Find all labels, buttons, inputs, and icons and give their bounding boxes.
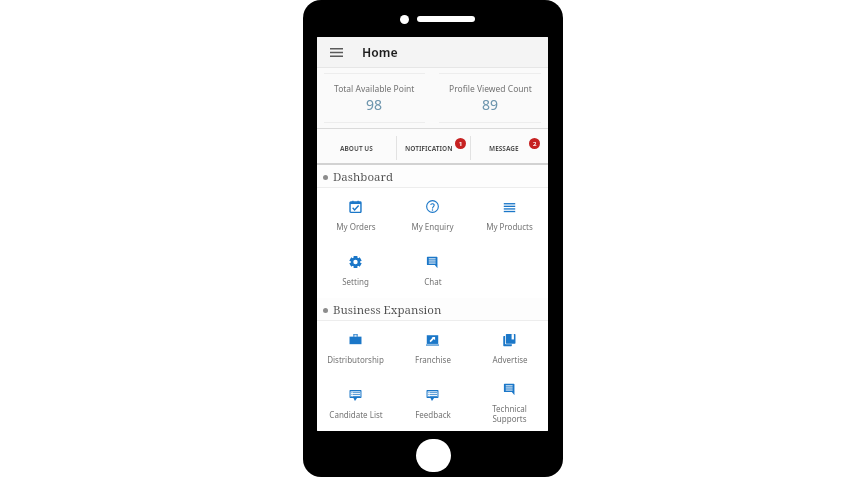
button[interactable]: My Enquiry (394, 188, 471, 243)
staticText: My Products (486, 221, 533, 232)
button[interactable]: My Orders (317, 188, 394, 243)
button[interactable]: Technical Supports (471, 376, 548, 431)
button[interactable]: Advertise (471, 321, 548, 376)
staticText: Profile Viewed Count (449, 83, 532, 95)
staticText: 1 (459, 140, 463, 148)
staticText: ABOUT US (340, 144, 373, 153)
staticText: My Orders (336, 221, 376, 232)
staticText: Chat (424, 276, 442, 287)
button[interactable]: Distributorship (317, 321, 394, 376)
staticText: Candidate List (329, 409, 383, 420)
button[interactable]: Menu (325, 41, 347, 63)
staticText: Distributorship (327, 354, 384, 365)
staticText: Dashboard (333, 169, 393, 185)
staticText: NOTIFICATION (405, 144, 453, 153)
button[interactable]: Chat (394, 243, 471, 298)
staticText: My Enquiry (411, 221, 454, 232)
button[interactable]: Feedback (394, 376, 471, 431)
button[interactable]: MESSAGE (471, 131, 548, 165)
staticText: 2 (533, 140, 537, 148)
button[interactable]: NOTIFICATION (397, 131, 470, 165)
staticText: Home (362, 44, 398, 60)
staticText: 89 (482, 95, 499, 114)
staticText: Franchise (415, 354, 451, 365)
button[interactable]: ABOUT US (317, 131, 396, 165)
staticText: Setting (342, 276, 369, 287)
button[interactable]: Franchise (394, 321, 471, 376)
staticText: Business Expansion (333, 302, 442, 318)
staticText: MESSAGE (489, 144, 519, 153)
button[interactable]: Candidate List (317, 376, 394, 431)
staticText: Total Available Point (334, 83, 415, 95)
staticText: 98 (366, 95, 383, 114)
staticText: Technical Supports (492, 403, 527, 424)
button[interactable]: Setting (317, 243, 394, 298)
staticText: Feedback (415, 409, 451, 420)
button[interactable]: My Products (471, 188, 548, 243)
button[interactable]: Profile Viewed Count (432, 73, 548, 123)
staticText: Advertise (492, 354, 528, 365)
button[interactable]: Total Available Point (317, 73, 432, 123)
